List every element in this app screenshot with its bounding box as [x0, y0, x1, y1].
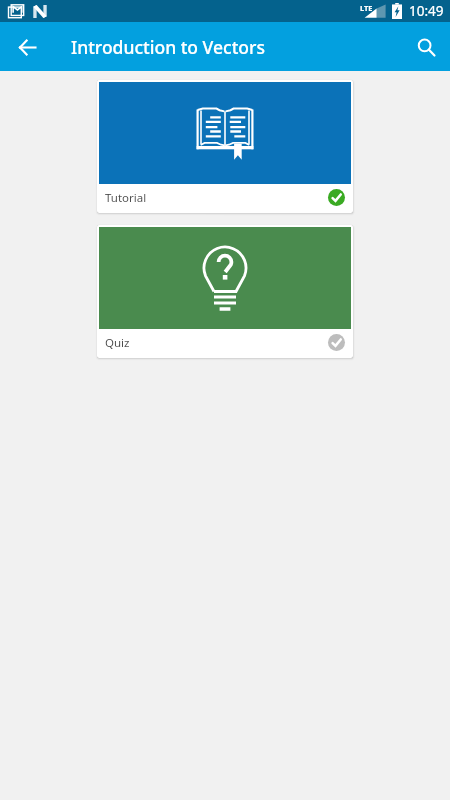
staticText: Introduction to Vectors [71, 35, 265, 59]
staticText: LTE [360, 3, 373, 13]
button[interactable]: Back [3, 23, 51, 71]
button[interactable]: Quiz [97, 225, 353, 358]
staticText: Tutorial [105, 190, 147, 206]
staticText: 10:49 [409, 2, 444, 20]
staticText: Quiz [105, 335, 130, 351]
button[interactable]: Tutorial [97, 80, 353, 213]
button[interactable]: Search [402, 23, 450, 71]
